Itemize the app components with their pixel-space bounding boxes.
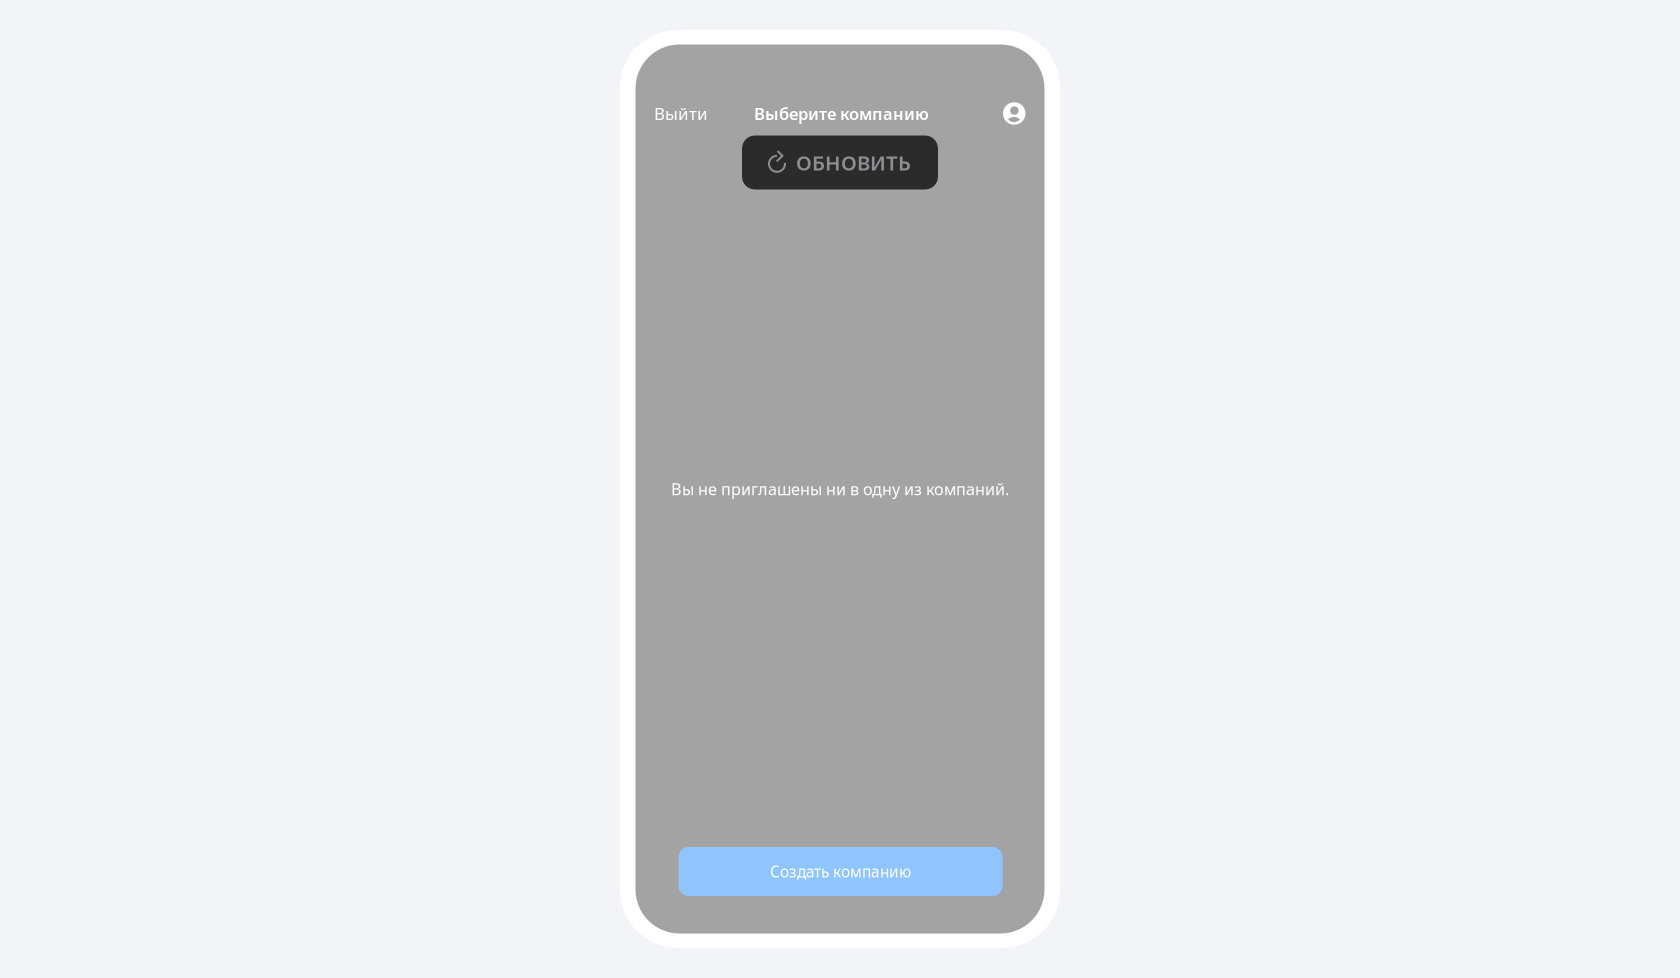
- staticText: Создать компанию: [770, 861, 911, 882]
- staticText: Выйти: [654, 102, 708, 125]
- button[interactable]: Профиль: [998, 97, 1030, 130]
- button[interactable]: Выйти: [651, 93, 711, 134]
- staticText: Выберите компанию: [754, 102, 929, 125]
- button[interactable]: Создать компанию: [678, 847, 1002, 896]
- staticText: Вы не приглашены ни в одну из компаний.: [671, 478, 1009, 500]
- staticText: ОБНОВИТЬ: [796, 149, 911, 176]
- button[interactable]: ОБНОВИТЬ: [742, 135, 938, 189]
